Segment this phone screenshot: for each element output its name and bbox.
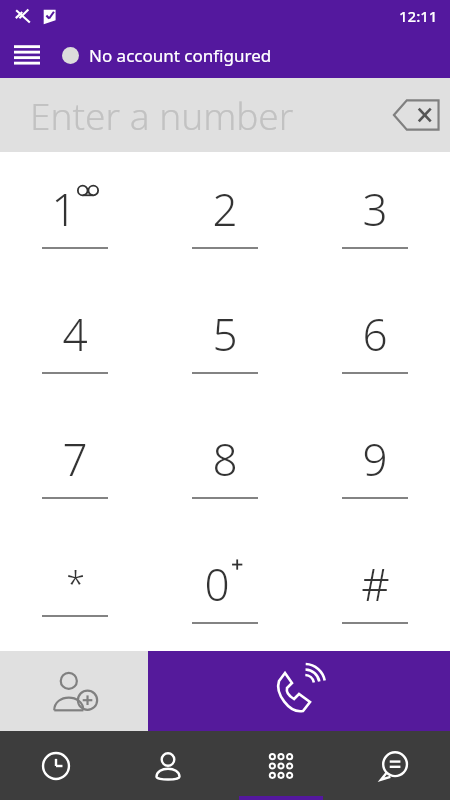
button[interactable]: Open navigation menu <box>0 32 54 78</box>
button[interactable]: Messages <box>337 731 450 800</box>
button[interactable]: Keypad <box>224 731 337 800</box>
staticText: 1 <box>51 179 77 239</box>
button[interactable]: Call <box>148 651 450 731</box>
button[interactable]: Add contact <box>0 651 148 731</box>
button[interactable]: Backspace <box>390 92 442 138</box>
button[interactable]: 6 <box>300 276 450 401</box>
button[interactable]: 4 <box>0 276 150 401</box>
button[interactable]: 2 <box>150 152 300 276</box>
button[interactable]: 7 <box>0 401 150 526</box>
staticText: 8 <box>212 429 238 489</box>
button[interactable]: Recent calls <box>0 731 112 800</box>
button[interactable]: 0 <box>150 526 300 651</box>
staticText: * <box>66 561 85 607</box>
staticText: 4 <box>62 304 88 364</box>
staticText: 9 <box>362 429 388 489</box>
button[interactable]: 9 <box>300 401 450 526</box>
staticText: # <box>361 554 390 614</box>
staticText: 7 <box>62 429 88 489</box>
staticText: 5 <box>212 304 238 364</box>
staticText: 3 <box>362 179 388 239</box>
button[interactable]: 5 <box>150 276 300 401</box>
staticText: 0 <box>204 554 230 614</box>
staticText: 12:11 <box>399 6 438 26</box>
staticText: 6 <box>362 304 388 364</box>
button[interactable]: 1 <box>0 152 150 276</box>
button[interactable]: 3 <box>300 152 450 276</box>
button[interactable]: * <box>0 526 150 651</box>
button[interactable]: 8 <box>150 401 300 526</box>
staticText: Enter a number <box>30 90 294 140</box>
staticText: No account configured <box>89 44 272 67</box>
button[interactable]: Contacts <box>112 731 224 800</box>
staticText: 2 <box>212 179 238 239</box>
button[interactable]: # <box>300 526 450 651</box>
